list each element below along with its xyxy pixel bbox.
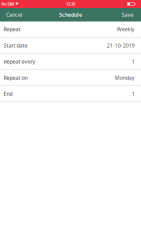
staticText: Schedule [59, 11, 82, 18]
staticText: 1 [132, 58, 135, 65]
staticText: 21-10-2019 [107, 42, 135, 49]
staticText: No SIM [2, 1, 15, 7]
staticText: Monday [115, 74, 135, 81]
button[interactable]: Repeat every [0, 54, 141, 70]
staticText: 1 [132, 90, 135, 97]
staticText: Weekly [117, 26, 135, 33]
button[interactable]: End [0, 86, 141, 102]
staticText: Start date [4, 42, 28, 49]
staticText: 12:39 [66, 1, 75, 7]
button[interactable]: Save [117, 8, 141, 21]
staticText: End [4, 90, 13, 97]
button[interactable]: Start date [0, 38, 141, 54]
button[interactable]: Repeat on [0, 70, 141, 86]
staticText: Repeat on [4, 74, 28, 81]
button[interactable]: Repeat [0, 21, 141, 38]
staticText: Save [121, 11, 133, 18]
button[interactable]: Cancel [0, 8, 26, 21]
staticText: Repeat [4, 26, 21, 33]
staticText: Repeat every [4, 58, 36, 65]
staticText: Cancel [6, 11, 22, 18]
